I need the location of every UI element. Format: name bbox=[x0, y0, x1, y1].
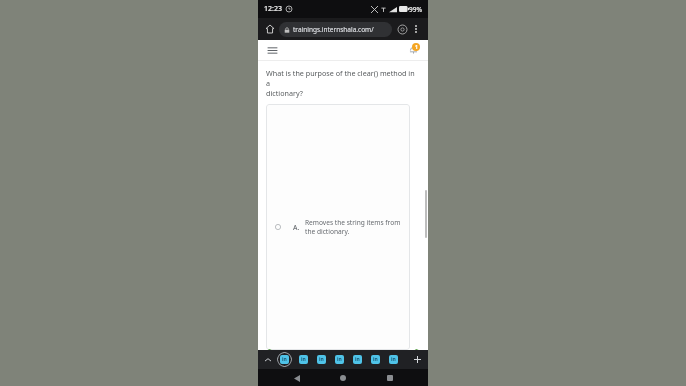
button[interactable]: New tab bbox=[411, 353, 424, 366]
staticText: in bbox=[355, 356, 360, 363]
staticText: trainings.internshala.com/learn/pj bbox=[293, 25, 387, 34]
button[interactable]: Tab bbox=[315, 353, 328, 366]
button[interactable]: More options bbox=[409, 22, 423, 36]
staticText: What is the purpose of the clear() metho… bbox=[266, 68, 420, 98]
button[interactable]: Expand tabs bbox=[262, 354, 274, 366]
button[interactable]: Tab bbox=[333, 353, 346, 366]
staticText: in bbox=[391, 356, 396, 363]
staticText: 1 bbox=[415, 44, 418, 51]
staticText: in bbox=[373, 356, 378, 363]
button[interactable]: trainings.internshala.com/learn/pj bbox=[279, 22, 392, 37]
button[interactable]: Recent apps bbox=[382, 370, 398, 386]
button[interactable]: Home bbox=[335, 370, 351, 386]
staticText: in bbox=[337, 356, 342, 363]
button[interactable]: A. bbox=[266, 104, 410, 350]
button[interactable]: Current tab bbox=[277, 352, 292, 367]
button[interactable]: Account bbox=[395, 22, 409, 36]
staticText: A. bbox=[293, 223, 300, 232]
staticText: 99% bbox=[409, 5, 422, 14]
button[interactable]: Home bbox=[263, 22, 277, 36]
button[interactable]: Tab bbox=[369, 353, 382, 366]
button[interactable]: Menu bbox=[265, 43, 279, 57]
staticText: in bbox=[319, 356, 324, 363]
button[interactable]: Tab bbox=[387, 353, 400, 366]
button[interactable]: Tab bbox=[297, 353, 310, 366]
button[interactable]: Notifications bbox=[405, 42, 421, 58]
button[interactable]: Tab bbox=[351, 353, 364, 366]
button[interactable]: Back bbox=[289, 370, 305, 386]
staticText: in bbox=[301, 356, 306, 363]
staticText: Removes the string items from the dictio… bbox=[305, 218, 401, 236]
staticText: in bbox=[282, 356, 287, 363]
staticText: 12:23 bbox=[264, 4, 282, 14]
